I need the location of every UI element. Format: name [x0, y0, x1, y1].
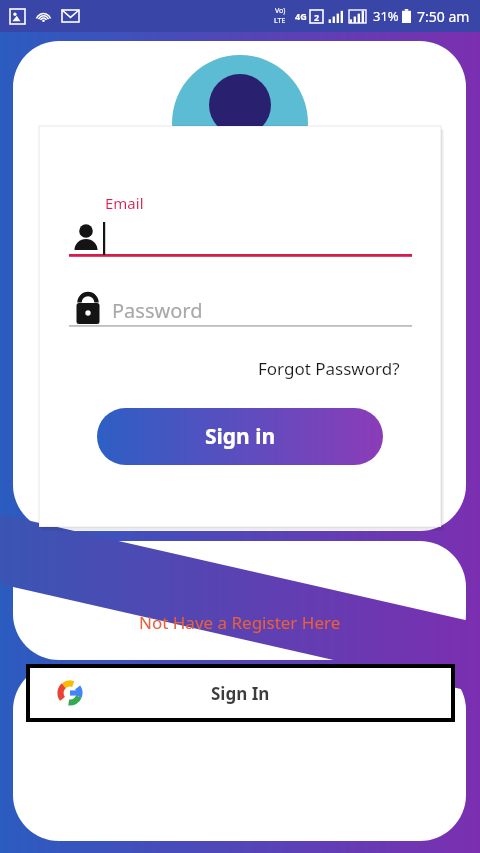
- staticText: Vo): [275, 6, 286, 16]
- staticText: 31%: [373, 7, 399, 25]
- staticText: Sign In: [211, 682, 270, 705]
- button[interactable]: Forgot Password?: [258, 357, 400, 380]
- staticText: Sign in: [205, 422, 276, 451]
- staticText: Not Have a Register Here: [139, 611, 341, 634]
- other: Sign in with Google: [56, 679, 84, 707]
- button[interactable]: Not Have a Register Here: [0, 611, 480, 634]
- staticText: 4G: [295, 10, 307, 22]
- button[interactable]: Sign in: [97, 408, 383, 465]
- staticText: 7:50 am: [417, 7, 470, 26]
- staticText: 2: [314, 11, 320, 23]
- staticText: LTE: [274, 16, 286, 26]
- button[interactable]: Sign In: [30, 668, 451, 718]
- staticText: Email: [105, 193, 144, 213]
- staticText: Forgot Password?: [258, 357, 400, 380]
- staticText: Password: [112, 297, 203, 324]
